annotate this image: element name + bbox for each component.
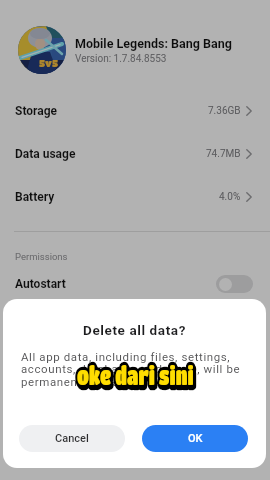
staticText: Battery: [15, 190, 55, 204]
staticText: oke dari sini: [77, 360, 194, 389]
staticText: Delete all data?: [3, 322, 266, 338]
staticText: Version: 1.7.84.8553: [75, 53, 167, 65]
button[interactable]: Battery: [0, 175, 270, 218]
staticText: 7.36GB: [208, 105, 241, 117]
staticText: OK: [188, 432, 203, 445]
staticText: Data usage: [15, 147, 76, 161]
staticText: Mobile Legends: Bang Bang: [75, 36, 232, 51]
staticText: 5v5: [39, 57, 59, 68]
staticText: Storage: [15, 104, 58, 118]
staticText: All app data, including files, settings,…: [21, 350, 261, 389]
button[interactable]: Storage: [0, 89, 270, 132]
staticText: 74.7MB: [206, 148, 241, 160]
button[interactable]: Data usage: [0, 132, 270, 175]
button[interactable]: Autostart: [0, 267, 270, 301]
button[interactable]: OK: [142, 425, 248, 452]
staticText: 4.0%: [219, 191, 241, 203]
staticText: oke dari sini: [77, 360, 194, 389]
button[interactable]: Cancel: [19, 425, 125, 452]
staticText: Cancel: [55, 432, 89, 445]
staticText: Autostart: [15, 277, 66, 291]
staticText: Permissions: [15, 251, 68, 262]
button[interactable]: [216, 275, 253, 293]
staticText: oke dari sini: [78, 362, 195, 391]
